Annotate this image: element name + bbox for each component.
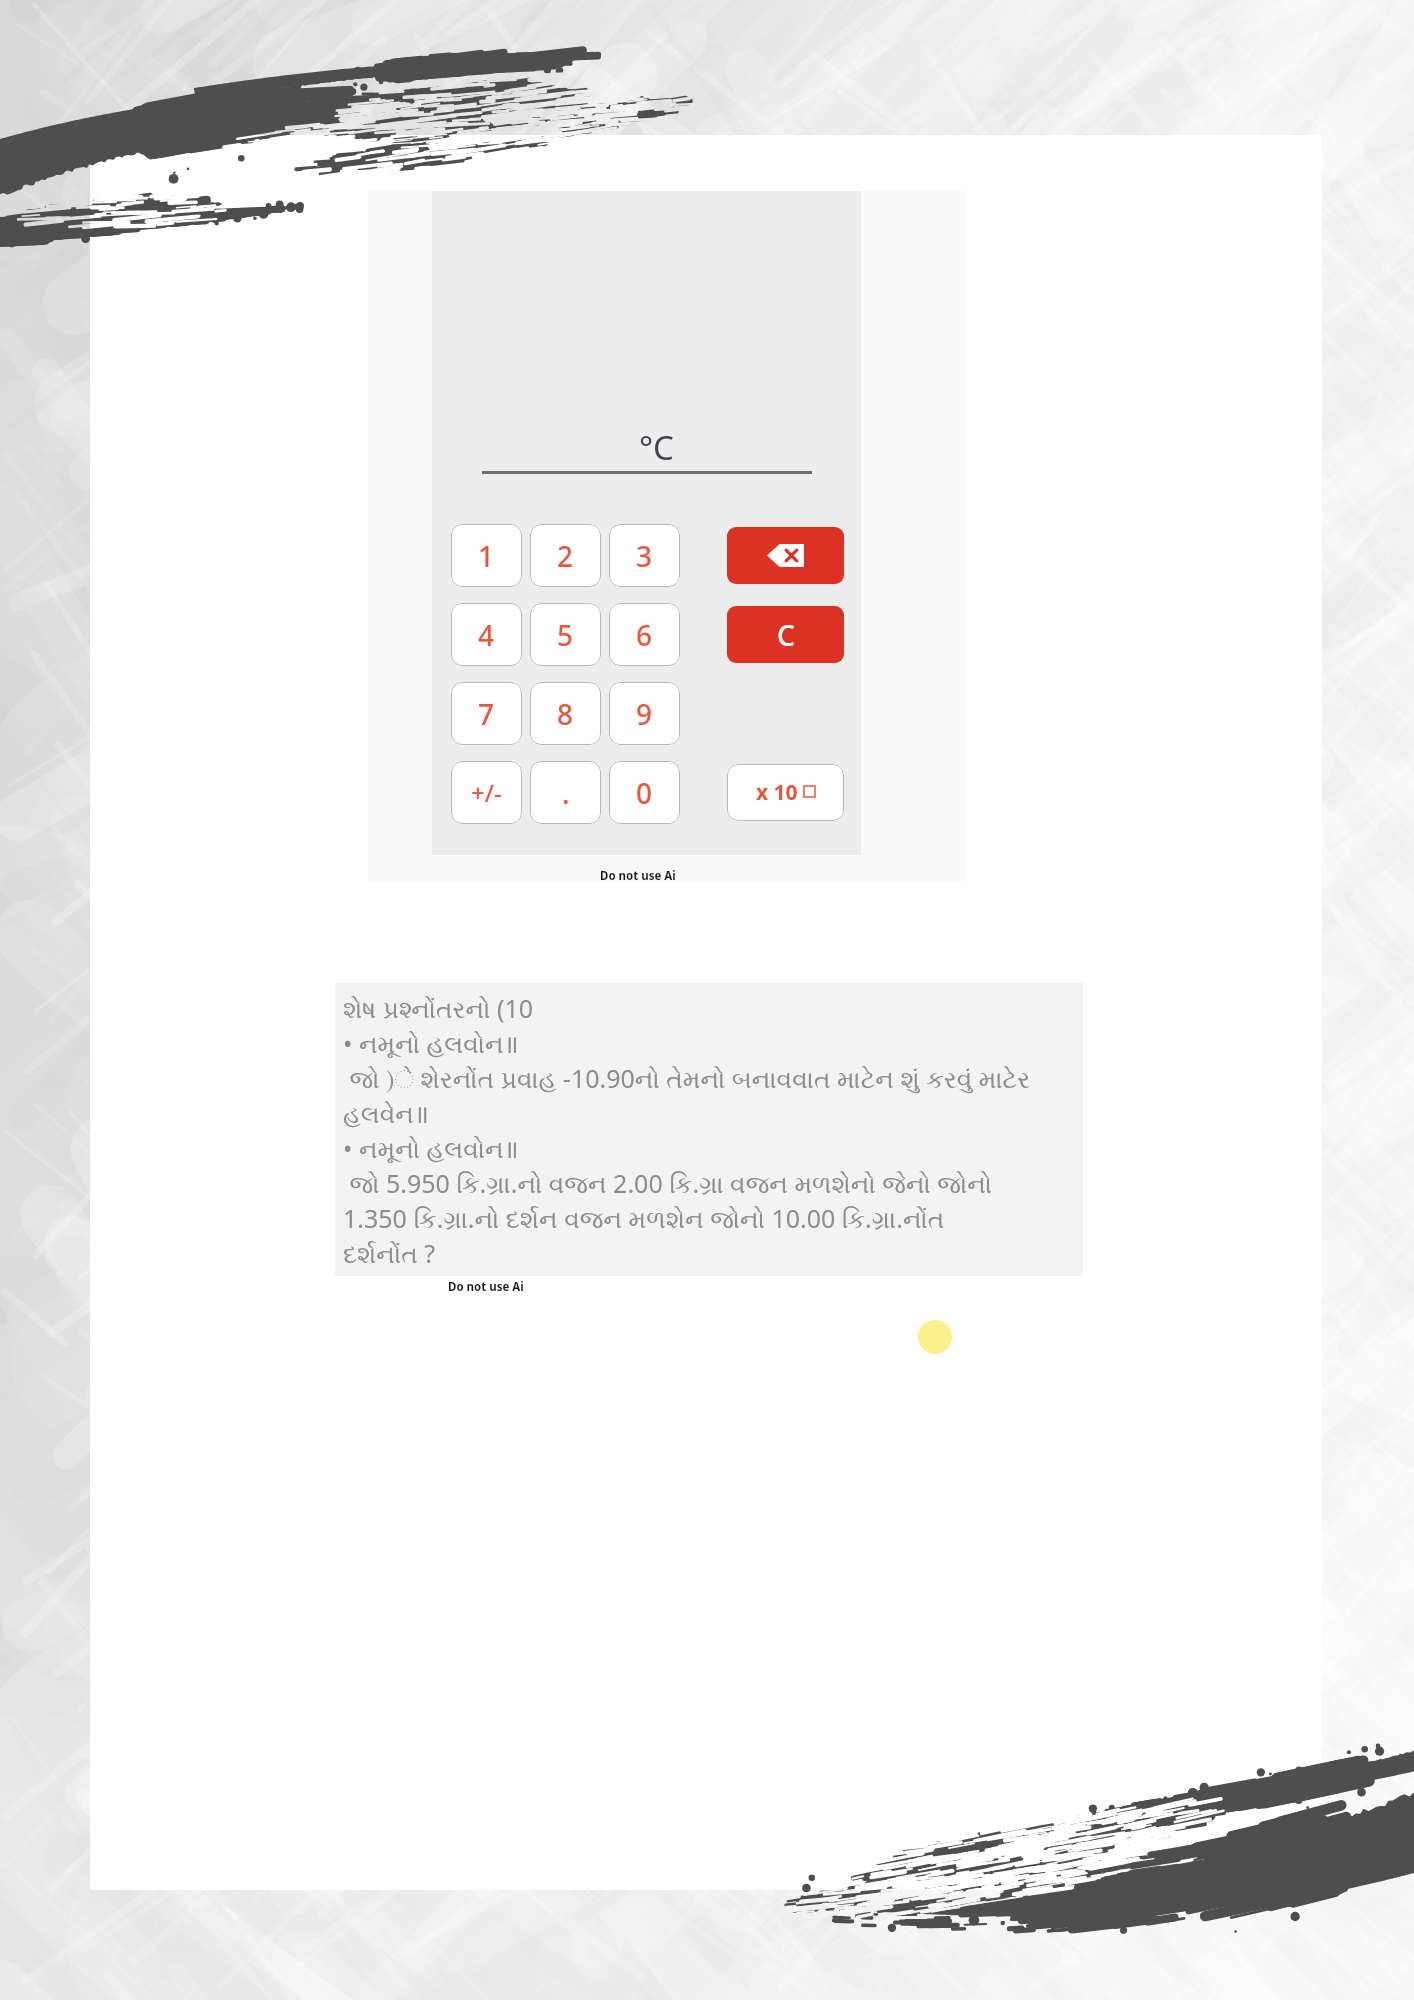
- staticText: 6: [636, 616, 653, 654]
- staticText: 9: [636, 695, 653, 733]
- staticText: 4: [478, 616, 495, 654]
- staticText: દર્શનોંત ?: [343, 1236, 436, 1270]
- staticText: Do not use Ai: [448, 1279, 524, 1295]
- staticText: .: [562, 774, 570, 812]
- staticText: જો )ે શેરનોંત પ્રવાહ -10.90નો તેમનો બનાવ…: [343, 1061, 1031, 1095]
- staticText: x 10: [756, 778, 798, 807]
- button[interactable]: 1: [451, 524, 522, 587]
- staticText: °C: [639, 425, 674, 465]
- staticText: હલવેન॥: [343, 1096, 429, 1130]
- button[interactable]: 3: [609, 524, 680, 587]
- staticText: • નમૂનો હલવોન॥: [343, 1131, 519, 1165]
- button[interactable]: 4: [451, 603, 522, 666]
- button[interactable]: Marker: [918, 1320, 952, 1354]
- staticText: 1.350 કિ.ગ્રા.નો દર્શન વજન મળશેન જોનો 10…: [343, 1201, 945, 1235]
- button[interactable]: 5: [530, 603, 601, 666]
- staticText: 3: [636, 537, 653, 575]
- staticText: 7: [478, 695, 495, 733]
- staticText: 1: [478, 537, 495, 575]
- staticText: • નમૂનો હલવોન॥: [343, 1026, 519, 1060]
- staticText: 8: [557, 695, 574, 733]
- button[interactable]: x 10: [727, 764, 844, 821]
- button[interactable]: 8: [530, 682, 601, 745]
- button[interactable]: +/-: [451, 761, 522, 824]
- button[interactable]: .: [530, 761, 601, 824]
- staticText: શેષ પ્રશ્નોંતરનો (10: [343, 991, 534, 1025]
- button[interactable]: 6: [609, 603, 680, 666]
- staticText: 2: [557, 537, 574, 575]
- staticText: Do not use Ai: [600, 868, 676, 884]
- staticText: 5: [557, 616, 574, 654]
- staticText: C: [777, 616, 795, 654]
- staticText: +/-: [471, 776, 502, 809]
- button[interactable]: 0: [609, 761, 680, 824]
- button[interactable]: 9: [609, 682, 680, 745]
- button[interactable]: 2: [530, 524, 601, 587]
- button[interactable]: Backspace: [727, 527, 844, 584]
- button[interactable]: C: [727, 606, 844, 663]
- staticText: 0: [636, 774, 653, 812]
- staticText: જો 5.950 કિ.ગ્રા.નો વજન 2.00 કિ.ગ્રા વજન…: [343, 1166, 993, 1200]
- button[interactable]: 7: [451, 682, 522, 745]
